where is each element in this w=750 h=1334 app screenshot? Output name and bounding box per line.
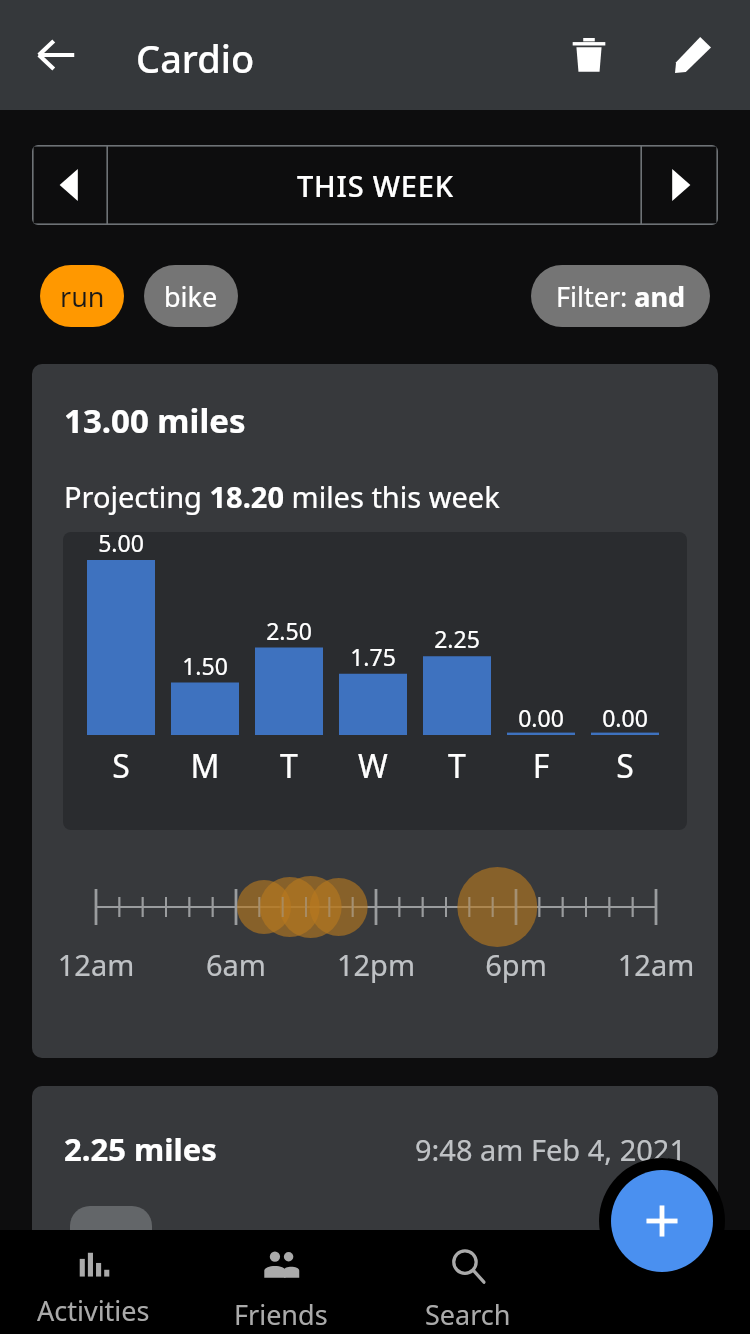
button[interactable]: run (40, 265, 124, 327)
button[interactable]: Edit (657, 19, 729, 91)
staticText: S (580, 744, 670, 788)
button[interactable]: THIS WEEK (108, 145, 642, 225)
button[interactable]: Next week (642, 145, 718, 225)
staticText: bike (164, 278, 218, 315)
staticText: 0.00 (496, 702, 586, 733)
button[interactable]: Search (374, 1230, 562, 1334)
staticText: Activities (37, 1292, 150, 1329)
staticText: 9:48 am Feb 4, 2021 (320, 1130, 686, 1169)
staticText: 5.00 (76, 532, 166, 558)
staticText: W (328, 744, 418, 788)
button[interactable]: 13.00 miles (32, 364, 718, 1058)
staticText: T (244, 744, 334, 788)
button[interactable]: Friends (187, 1230, 374, 1334)
staticText: M (160, 744, 250, 788)
button[interactable]: bike (144, 265, 238, 327)
staticText: Projecting 18.20 miles this week (64, 477, 500, 516)
staticText: T (412, 744, 502, 788)
staticText: 12pm (306, 945, 446, 984)
button[interactable]: Delete (553, 19, 625, 91)
staticText: 12am (586, 945, 718, 984)
staticText: Search (425, 1296, 511, 1333)
staticText: Cardio (136, 32, 255, 84)
button[interactable]: Previous week (32, 145, 108, 225)
staticText: Filter: and (556, 278, 686, 315)
staticText: 13.00 miles (64, 398, 246, 443)
staticText: 2.25 (412, 623, 502, 654)
staticText: S (76, 744, 166, 788)
staticText: Friends (234, 1296, 328, 1333)
staticText: 1.50 (160, 650, 250, 681)
staticText: 2.25 miles (64, 1128, 217, 1170)
staticText: run (60, 278, 105, 315)
staticText: 0.00 (580, 702, 670, 733)
staticText: 6am (166, 945, 306, 984)
button[interactable]: Activities (0, 1230, 187, 1334)
staticText: F (496, 744, 586, 788)
button[interactable]: Add activity (599, 1158, 725, 1284)
staticText: THIS WEEK (297, 166, 454, 205)
staticText: 6pm (446, 945, 586, 984)
button[interactable]: Filter: and (531, 265, 710, 327)
button[interactable]: 2.25 miles (32, 1086, 718, 1246)
staticText: 1.75 (328, 641, 418, 672)
staticText: 2.50 (244, 615, 334, 646)
button[interactable]: Back (22, 21, 90, 89)
staticText: 12am (32, 945, 166, 984)
